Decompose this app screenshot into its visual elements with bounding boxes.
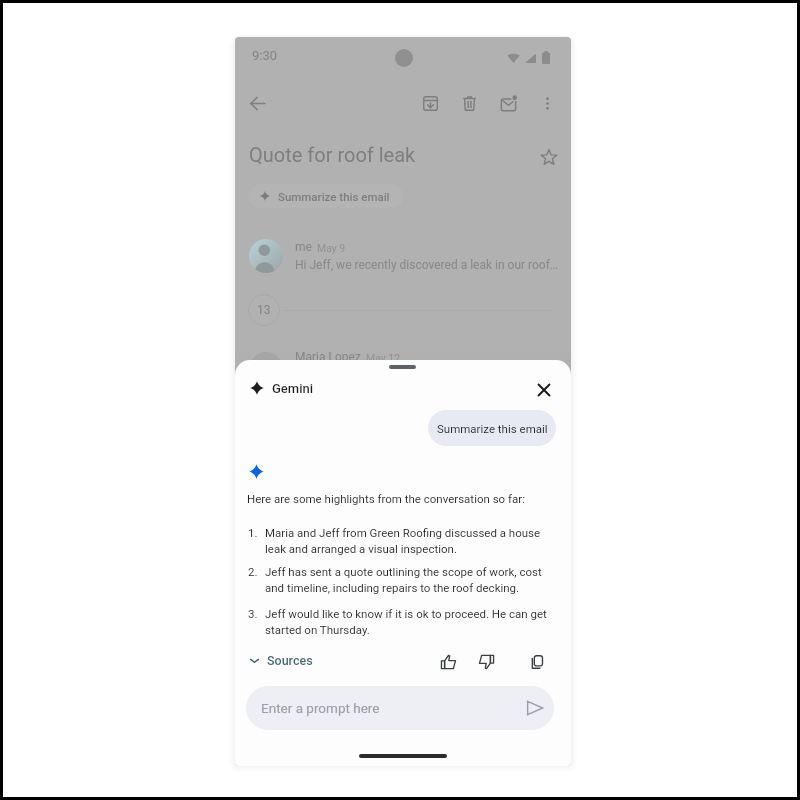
staticText: me [295, 240, 312, 254]
button[interactable]: 13 [248, 294, 280, 326]
staticText: 3. [248, 607, 265, 620]
button[interactable]: Bad response [473, 648, 500, 675]
button[interactable]: Sources [247, 650, 316, 671]
staticText: Jeff would like to know if it is ok to p… [265, 607, 547, 636]
staticText: Sources [267, 653, 313, 668]
button[interactable]: Summarize this email [249, 184, 403, 208]
button[interactable] [235, 231, 571, 283]
button[interactable]: Back [243, 89, 272, 118]
staticText: Maria Lopez [295, 350, 361, 364]
button[interactable]: Star [535, 143, 562, 170]
button[interactable]: More options [533, 89, 562, 118]
button[interactable]: Enter a prompt here [246, 686, 554, 730]
staticText: Quote for roof leak [249, 143, 416, 166]
staticText: Maria and Jeff from Green Roofing discus… [265, 526, 541, 555]
staticText: 9:30 [252, 48, 278, 63]
staticText: 13 [257, 303, 271, 317]
staticText: 2. [248, 565, 265, 578]
staticText: Hi Jeff, we recently discovered a leak i… [295, 258, 563, 272]
button[interactable] [235, 343, 571, 387]
staticText: 1. [248, 526, 265, 539]
button[interactable]: Delete [455, 89, 484, 118]
staticText: Summarize this email [278, 190, 390, 203]
button[interactable]: Good response [435, 648, 462, 675]
button[interactable]: Summarize this email [428, 410, 556, 446]
button[interactable]: Mark unread [495, 89, 524, 118]
staticText: Here are some highlights from the conver… [247, 492, 525, 505]
button[interactable]: Close [531, 377, 557, 403]
staticText: May 9 [317, 242, 346, 254]
button[interactable]: Copy [523, 648, 550, 675]
button[interactable]: Archive [416, 89, 445, 118]
staticText: Jeff has sent a quote outlining the scop… [265, 565, 542, 594]
staticText: Gemini [272, 381, 314, 396]
staticText: Enter a prompt here [261, 700, 380, 716]
staticText: May 12 [366, 352, 401, 364]
staticText: Summarize this email [437, 422, 548, 435]
